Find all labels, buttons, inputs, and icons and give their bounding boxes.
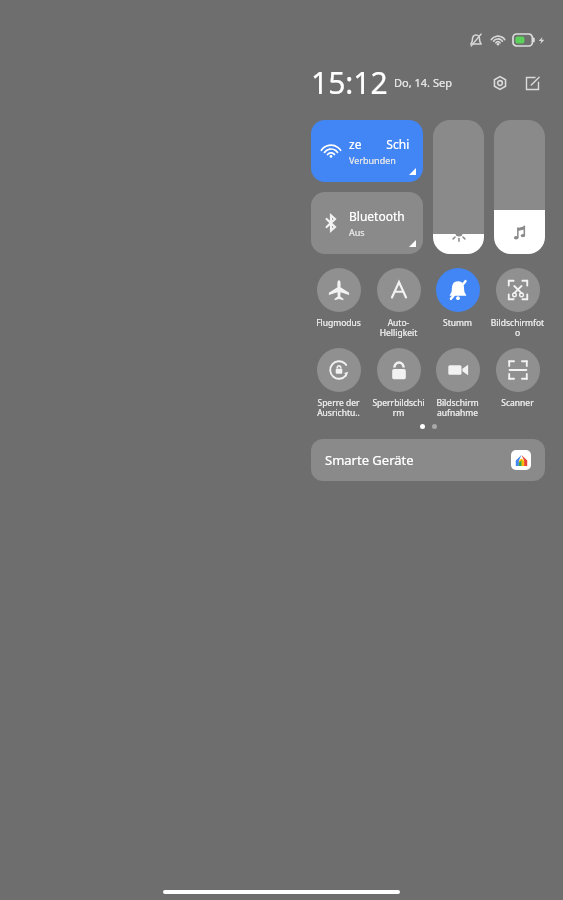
staticText: Stumm xyxy=(443,317,472,329)
staticText: Sperre der Ausrichtu.. xyxy=(311,397,366,418)
button[interactable]: Edit xyxy=(519,70,545,96)
staticText: 15:12 xyxy=(311,62,388,103)
button[interactable]: Bluetooth xyxy=(311,192,423,254)
button[interactable]: Slider xyxy=(433,120,484,254)
staticText: Verbunden xyxy=(349,154,396,166)
staticText: Aus xyxy=(349,226,365,238)
button[interactable]: Auto-Helligkeit xyxy=(371,268,426,338)
staticText: Auto-Helligkeit xyxy=(371,317,426,338)
staticText: Bildschirm aufnahme xyxy=(430,397,485,418)
button[interactable]: Sperre der Ausrichtu.. xyxy=(311,348,366,418)
button[interactable]: Slider xyxy=(494,120,545,254)
button[interactable]: Bildschirmfoto xyxy=(490,268,545,338)
staticText: Bluetooth xyxy=(349,208,405,224)
staticText: Do, 14. Sep xyxy=(394,75,452,90)
staticText: Bildschirmfoto xyxy=(490,317,545,338)
staticText: Sperrbildschirm xyxy=(371,397,426,418)
button[interactable]: ze Schi xyxy=(311,120,423,182)
staticText: Scanner xyxy=(501,397,534,409)
staticText: Flugmodus xyxy=(316,317,361,329)
button[interactable]: Settings xyxy=(487,70,513,96)
staticText: Smarte Geräte xyxy=(325,451,414,469)
button[interactable]: Stumm xyxy=(430,268,485,329)
button[interactable]: Flugmodus xyxy=(311,268,366,329)
button[interactable]: Bildschirm aufnahme xyxy=(430,348,485,418)
button[interactable]: Sperrbildschirm xyxy=(371,348,426,418)
button[interactable]: Scanner xyxy=(490,348,545,409)
staticText: ze Schi xyxy=(349,136,410,152)
button[interactable]: Smarte Geräte xyxy=(311,439,545,481)
